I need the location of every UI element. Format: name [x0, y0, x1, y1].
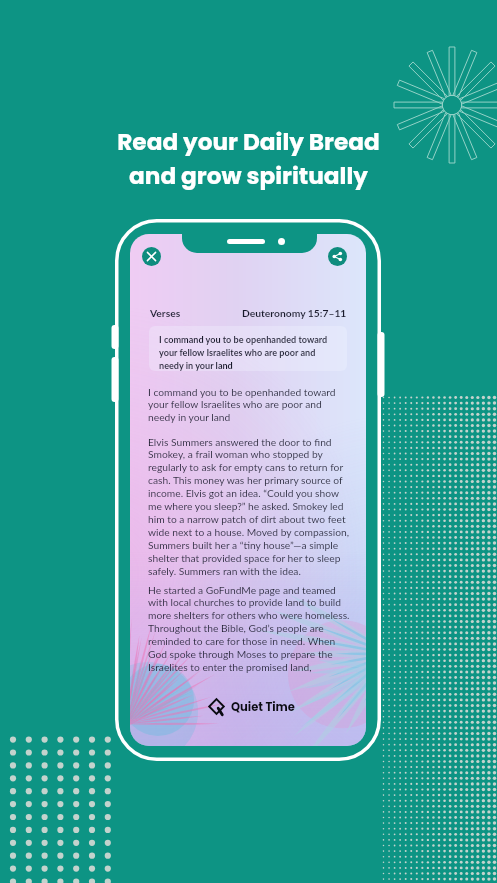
staticText: Quiet Time: [231, 699, 295, 715]
button[interactable]: Close: [142, 247, 161, 266]
button[interactable]: Share: [328, 247, 347, 266]
staticText: Elvis Summers answered the door to find …: [148, 436, 350, 578]
staticText: Read your Daily Bread and grow spiritual…: [117, 126, 380, 192]
staticText: I command you to be openhanded toward yo…: [148, 386, 350, 424]
staticText: Verses: [150, 307, 181, 319]
staticText: Deuteronomy 15:7–11: [242, 307, 347, 319]
staticText: He started a GoFundMe page and teamed wi…: [148, 584, 350, 674]
staticText: I command you to be openhanded toward yo…: [159, 334, 341, 371]
